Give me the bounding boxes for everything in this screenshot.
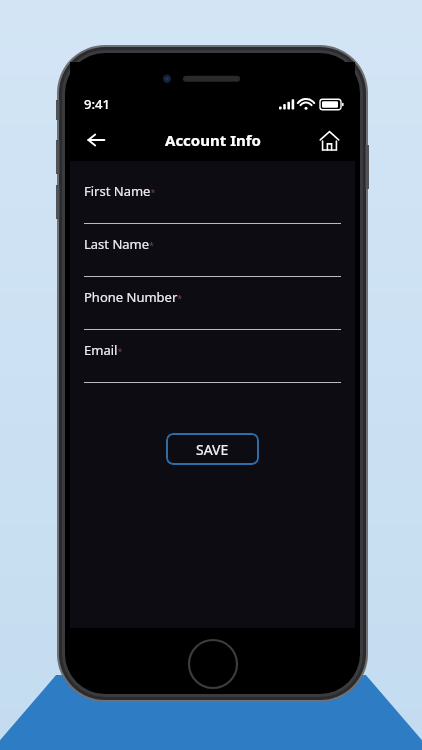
staticText: Phone Number* [84,288,183,306]
button[interactable]: Email* [84,330,341,383]
staticText: SAVE [196,440,229,459]
staticText: Last Name* [84,235,155,253]
staticText: Account Info [165,130,261,150]
button[interactable]: Home [309,120,349,160]
staticText: First Name* [84,182,156,200]
button[interactable]: Back [76,120,116,160]
button[interactable]: Phone Number* [84,277,341,330]
button[interactable]: SAVE [166,433,259,465]
staticText: Email* [84,341,123,359]
staticText: 9:41 [84,95,110,113]
button[interactable]: First Name* [84,171,341,224]
button[interactable]: Last Name* [84,224,341,277]
